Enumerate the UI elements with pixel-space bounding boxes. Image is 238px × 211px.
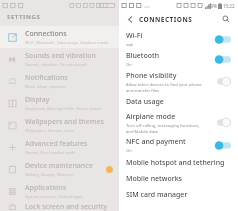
staticText: On <box>126 148 132 154</box>
button[interactable]: Airplane mode <box>119 110 238 135</box>
staticText: Battery, Storage, Memory <box>25 172 74 177</box>
staticText: CONNECTIONS <box>139 15 193 24</box>
staticText: Lock screen and security <box>25 202 108 211</box>
staticText: Display <box>25 95 50 105</box>
button[interactable]: Toggle on <box>214 55 231 64</box>
button[interactable]: Sounds and vibration <box>0 48 119 70</box>
staticText: Sounds, vibration, Do not disturb <box>25 62 88 67</box>
staticText: Advanced features <box>25 139 88 149</box>
staticText: Allow other devices to find your phone a… <box>126 82 208 93</box>
staticText: Wi-Fi <box>126 31 143 41</box>
button[interactable]: Wi-Fi <box>119 29 238 49</box>
button[interactable]: Search <box>220 13 232 25</box>
staticText: 15:22 <box>223 3 235 9</box>
staticText: Games, One-handed mode <box>25 150 76 155</box>
staticText: Block, allow, prioritize <box>25 84 66 89</box>
staticText: Data usage <box>126 97 164 107</box>
button[interactable]: Toggle off <box>214 77 231 86</box>
staticText: Device maintenance <box>25 161 93 171</box>
button[interactable]: Device maintenance <box>0 158 119 180</box>
button[interactable]: Notifications <box>0 70 119 92</box>
staticText: Wi-Fi, Bluetooth, Data usage, Airplane m… <box>25 40 108 45</box>
staticText: Mobile networks <box>126 174 182 184</box>
staticText: Connections <box>25 29 67 39</box>
button[interactable]: NFC and payment <box>119 135 238 155</box>
button[interactable]: Toggle on <box>214 35 231 44</box>
staticText: Sounds and vibration <box>25 51 97 61</box>
button[interactable]: Data usage <box>119 94 238 110</box>
button[interactable]: Toggle off <box>214 118 231 127</box>
staticText: Wallpapers, themes, icons <box>25 128 75 133</box>
staticText: SIM card manager <box>126 190 188 200</box>
staticText: Bluetooth <box>126 51 160 61</box>
button[interactable]: Advanced features <box>0 136 119 158</box>
button[interactable]: SIM card manager <box>119 187 238 203</box>
staticText: App permissions, Default apps <box>25 194 83 199</box>
button[interactable]: Applications <box>0 180 119 202</box>
staticText: Mobile hotspot and tethering <box>126 158 225 168</box>
button[interactable]: Mobile hotspot and tethering <box>119 155 238 171</box>
staticText: Wallpapers and themes <box>25 117 104 127</box>
button[interactable]: Connections <box>0 26 119 48</box>
staticText: Notifications <box>25 73 68 83</box>
staticText: sqb <box>126 42 134 48</box>
staticText: Airplane mode <box>126 112 176 122</box>
staticText: On <box>126 62 132 68</box>
staticText: NFC and payment <box>126 137 186 147</box>
staticText: Phone visibility <box>126 71 177 81</box>
staticText: Turn off calling, messaging functions, a… <box>126 123 208 134</box>
button[interactable]: Display <box>0 92 119 114</box>
staticText: Applications <box>25 183 67 193</box>
staticText: SETTINGS <box>7 13 41 21</box>
button[interactable]: Toggle on <box>214 141 231 150</box>
button[interactable]: Wallpapers and themes <box>0 114 119 136</box>
button[interactable]: Back <box>124 13 136 25</box>
button[interactable]: Lock screen and security <box>0 202 119 211</box>
staticText: 99% <box>208 3 217 9</box>
staticText: Brightness, Blue light filter, Home scre… <box>25 106 102 111</box>
button[interactable]: Mobile networks <box>119 171 238 187</box>
button[interactable]: Bluetooth <box>119 49 238 69</box>
button[interactable]: Phone visibility <box>119 69 238 94</box>
